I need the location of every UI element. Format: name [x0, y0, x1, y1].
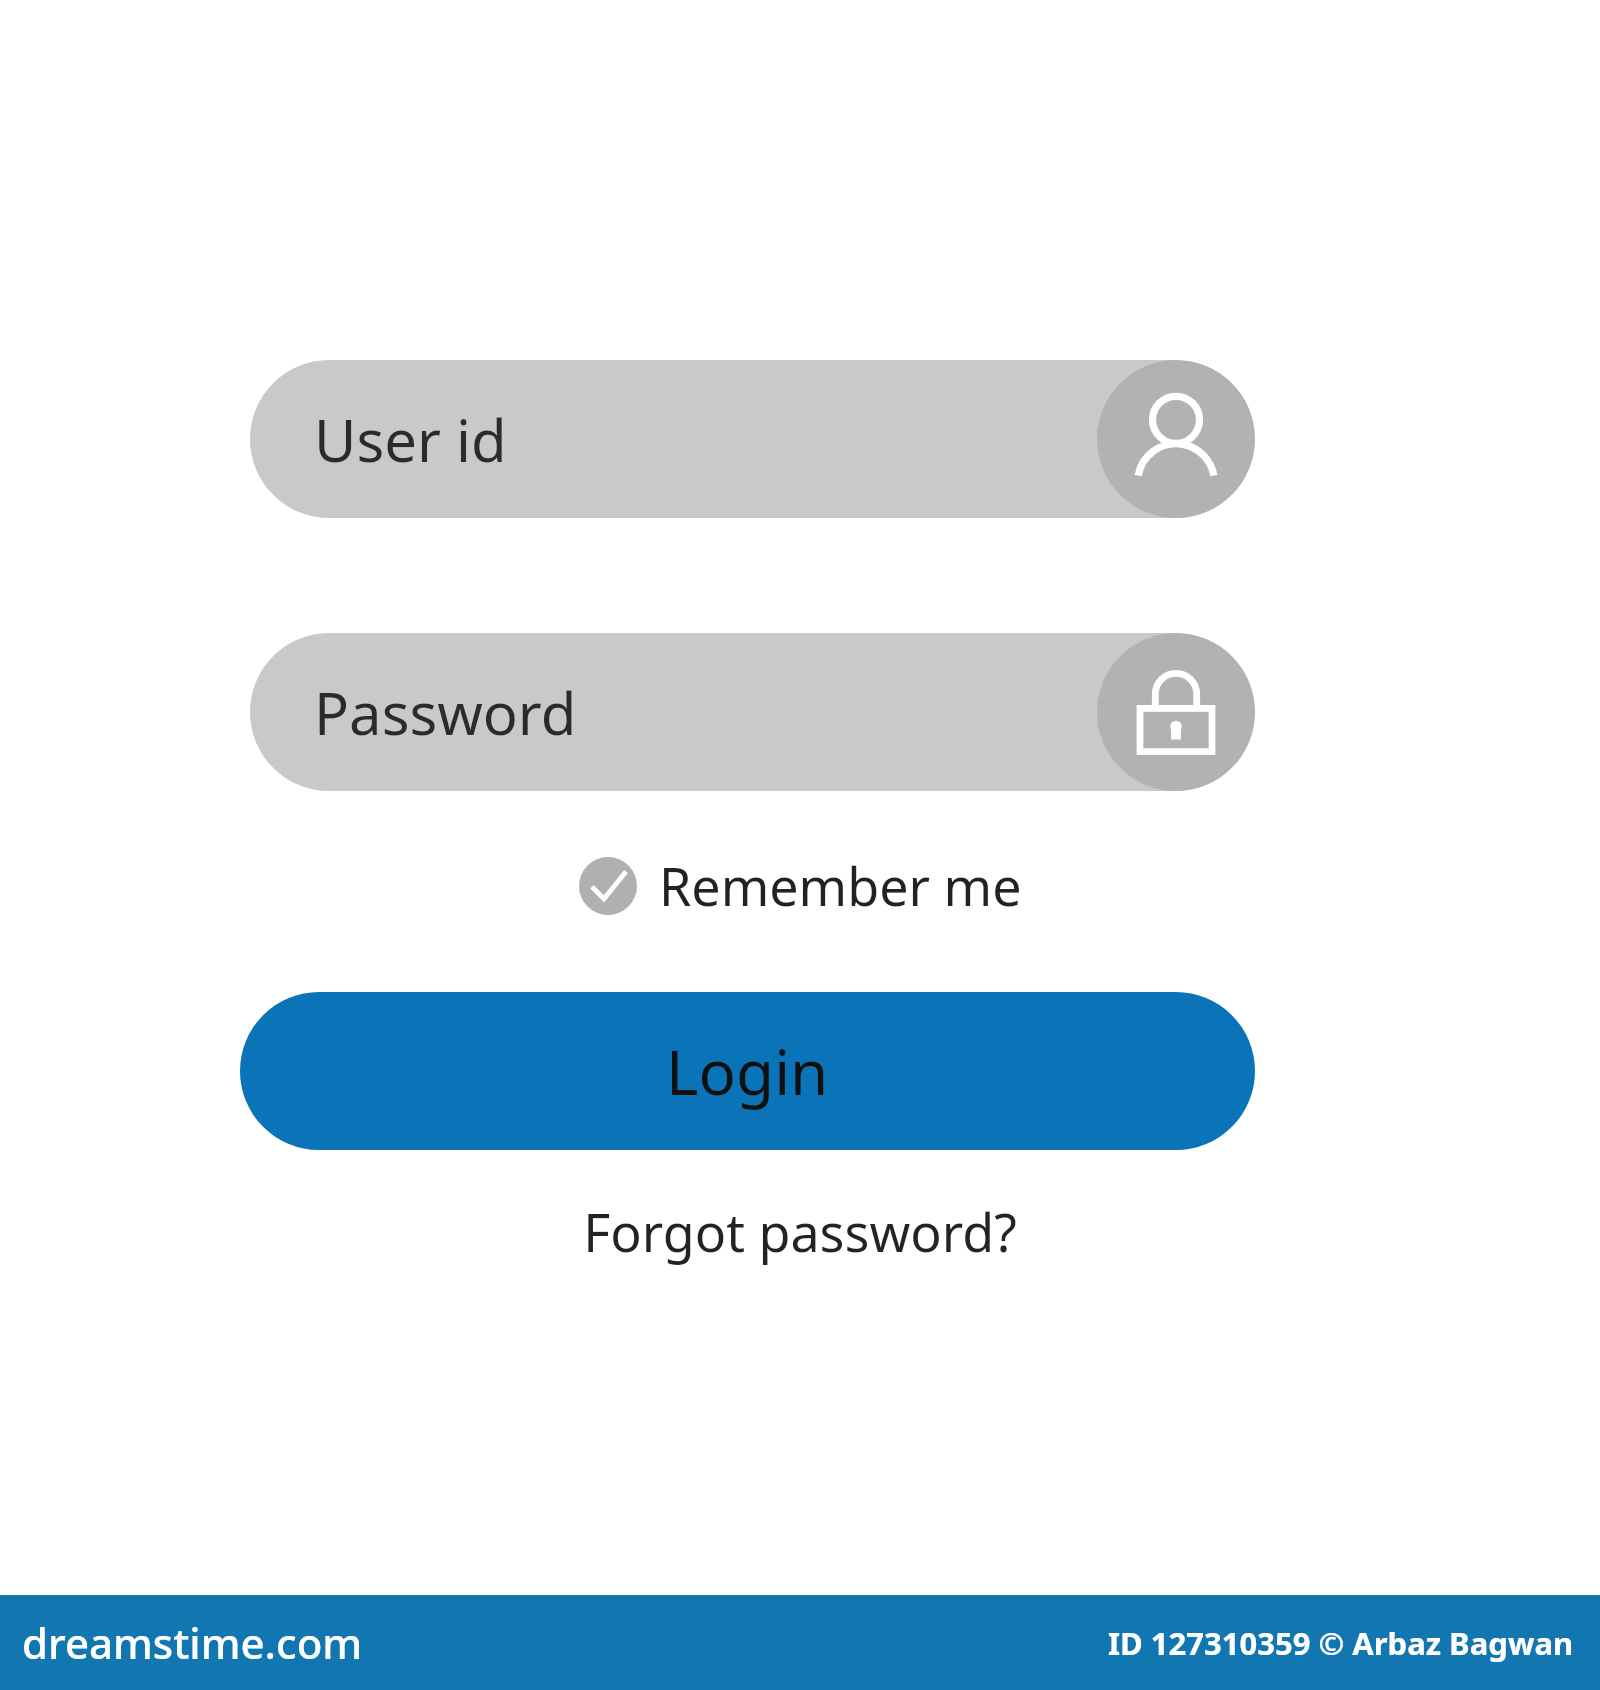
staticText: Remember me [659, 850, 1022, 921]
staticText: dreamstime.com [22, 1614, 363, 1671]
other: User account [1097, 360, 1255, 518]
staticText: Forgot password? [583, 1196, 1017, 1267]
staticText: Login [666, 1029, 829, 1113]
staticText: User id [314, 400, 507, 479]
button[interactable]: User id [250, 360, 1255, 518]
button[interactable]: Remember me [573, 846, 1028, 925]
button[interactable]: Password [250, 633, 1255, 791]
other: Password lock [1097, 633, 1255, 791]
staticText: ID 127310359 © Arbaz Bagwan [1108, 1622, 1574, 1664]
button[interactable]: Login [240, 992, 1255, 1150]
staticText: Password [314, 673, 577, 752]
button[interactable]: Forgot password? [569, 1190, 1031, 1273]
